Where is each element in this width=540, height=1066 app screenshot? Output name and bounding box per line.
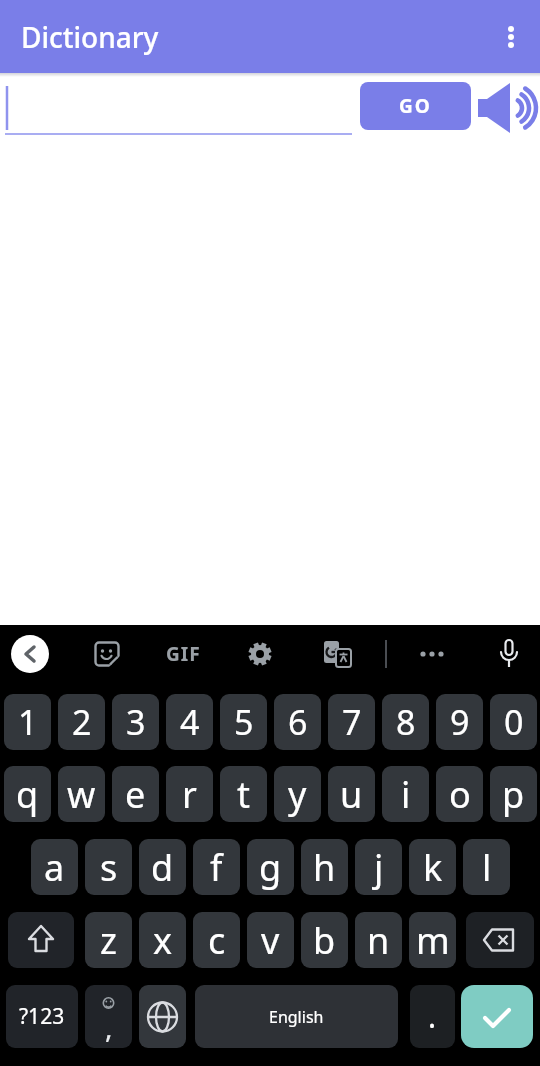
staticText: GIF — [166, 641, 201, 667]
button[interactable]: 9 — [436, 694, 483, 750]
staticText: n — [367, 916, 390, 965]
button[interactable]: g — [247, 839, 294, 895]
staticText: t — [237, 770, 250, 819]
button[interactable]: ?123 — [6, 985, 78, 1048]
button[interactable]: p — [490, 766, 537, 822]
button[interactable]: f — [193, 839, 240, 895]
button[interactable] — [83, 630, 131, 678]
button[interactable]: w — [58, 766, 105, 822]
staticText: h — [313, 843, 336, 892]
button[interactable]: h — [301, 839, 348, 895]
button[interactable]: , — [85, 985, 132, 1048]
button[interactable]: v — [247, 912, 294, 968]
button[interactable]: u — [328, 766, 375, 822]
staticText: GO — [399, 93, 432, 119]
staticText: g — [259, 843, 282, 892]
staticText: w — [67, 770, 96, 819]
staticText: 3 — [126, 699, 146, 745]
staticText: q — [16, 770, 39, 819]
staticText: m — [416, 916, 450, 965]
button[interactable]: i — [382, 766, 429, 822]
staticText: j — [374, 843, 384, 892]
button[interactable]: x — [139, 912, 186, 968]
staticText: u — [340, 770, 363, 819]
button[interactable]: 1 — [4, 694, 51, 750]
staticText: p — [502, 770, 525, 819]
staticText: o — [449, 770, 471, 819]
staticText: . — [428, 996, 437, 1037]
button[interactable]: m — [409, 912, 456, 968]
staticText: d — [151, 843, 174, 892]
button[interactable]: GO — [360, 82, 471, 130]
button[interactable]: o — [436, 766, 483, 822]
staticText: 7 — [342, 699, 362, 745]
button[interactable] — [474, 80, 540, 132]
button[interactable]: 0 — [490, 694, 537, 750]
button[interactable] — [8, 912, 74, 968]
staticText: a — [44, 843, 65, 892]
button[interactable]: 6 — [274, 694, 321, 750]
staticText: r — [182, 770, 197, 819]
staticText: ?123 — [19, 1002, 65, 1031]
button[interactable] — [313, 630, 361, 678]
staticText: 1 — [18, 699, 38, 745]
button[interactable]: k — [409, 839, 456, 895]
staticText: v — [261, 916, 280, 965]
staticText: 9 — [450, 699, 470, 745]
staticText: y — [288, 770, 307, 819]
button[interactable]: b — [301, 912, 348, 968]
staticText: English — [269, 1006, 324, 1028]
button[interactable]: 8 — [382, 694, 429, 750]
button[interactable]: r — [166, 766, 213, 822]
staticText: z — [100, 916, 117, 965]
button[interactable]: a — [31, 839, 78, 895]
button[interactable]: l — [463, 839, 510, 895]
button[interactable]: 4 — [166, 694, 213, 750]
button[interactable]: d — [139, 839, 186, 895]
staticText: c — [208, 916, 226, 965]
button[interactable]: c — [193, 912, 240, 968]
button[interactable]: 7 — [328, 694, 375, 750]
staticText: 6 — [288, 699, 308, 745]
button[interactable]: j — [355, 839, 402, 895]
staticText: 4 — [180, 699, 200, 745]
staticText: f — [210, 843, 223, 892]
button[interactable] — [139, 985, 186, 1048]
staticText: b — [313, 916, 336, 965]
button[interactable] — [236, 630, 284, 678]
staticText: 5 — [234, 699, 254, 745]
button[interactable]: q — [4, 766, 51, 822]
staticText: x — [153, 916, 173, 965]
staticText: 8 — [396, 699, 416, 745]
staticText: e — [125, 770, 146, 819]
button[interactable]: s — [85, 839, 132, 895]
button[interactable] — [408, 630, 456, 678]
staticText: Dictionary — [21, 18, 159, 56]
button[interactable]: 2 — [58, 694, 105, 750]
button[interactable]: z — [85, 912, 132, 968]
staticText: i — [401, 770, 411, 819]
button[interactable] — [6, 630, 54, 678]
staticText: 0 — [504, 699, 524, 745]
button[interactable] — [466, 912, 534, 968]
button[interactable]: 5 — [220, 694, 267, 750]
staticText: , — [105, 1008, 113, 1046]
staticText: s — [100, 843, 118, 892]
button[interactable] — [485, 630, 533, 678]
button[interactable]: . — [410, 985, 455, 1048]
button[interactable]: 3 — [112, 694, 159, 750]
button[interactable]: n — [355, 912, 402, 968]
button[interactable]: GIF — [159, 630, 207, 678]
staticText: l — [482, 843, 492, 892]
button[interactable] — [487, 13, 535, 61]
button[interactable]: e — [112, 766, 159, 822]
button[interactable]: y — [274, 766, 321, 822]
button[interactable]: English — [195, 985, 398, 1048]
staticText: k — [423, 843, 443, 892]
staticText: 2 — [72, 699, 92, 745]
button[interactable]: t — [220, 766, 267, 822]
button[interactable] — [461, 985, 533, 1048]
